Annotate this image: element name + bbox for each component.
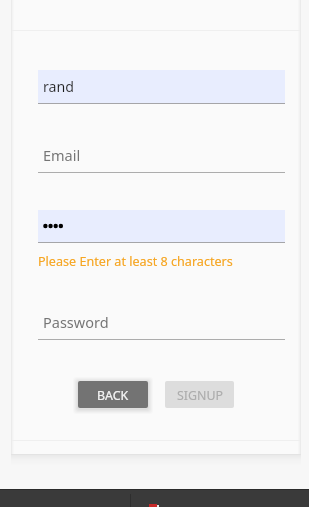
button[interactable]: Password [38, 308, 285, 339]
button[interactable] [38, 210, 285, 242]
button[interactable]: Email [38, 141, 285, 172]
staticText: Email [43, 145, 81, 165]
button[interactable]: SIGNUP [165, 381, 234, 408]
staticText: BACK [97, 387, 129, 404]
button[interactable]: rand [38, 70, 285, 103]
button[interactable]: BACK [78, 381, 148, 408]
staticText: SIGNUP [177, 387, 223, 404]
staticText: Password [43, 312, 109, 332]
staticText: Please Enter at least 8 characters [38, 253, 233, 270]
staticText: rand [43, 77, 75, 96]
